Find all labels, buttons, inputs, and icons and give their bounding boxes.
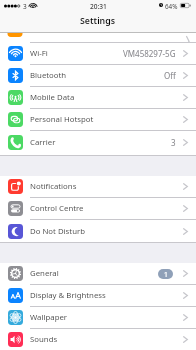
staticText: Settings (80, 15, 116, 27)
staticText: 64% (165, 2, 178, 11)
staticText: Sounds (30, 334, 58, 345)
staticText: 1 (164, 270, 168, 279)
staticText: Mobile Data (30, 92, 75, 103)
button[interactable]: Bluetooth (0, 65, 196, 87)
staticText: Off (164, 70, 176, 81)
staticText: 3 (23, 2, 27, 11)
staticText: VM458297-5G (123, 48, 176, 59)
button[interactable]: General (0, 263, 196, 285)
button[interactable]: Notifications (0, 176, 196, 198)
staticText: 3 (171, 137, 176, 148)
button[interactable]: Control Centre (0, 198, 196, 220)
staticText: Personal Hotspot (30, 114, 94, 125)
staticText: Carrier (30, 137, 56, 148)
staticText: Do Not Disturb (30, 226, 86, 237)
button[interactable]: Wallpaper (0, 307, 196, 329)
button[interactable]: Do Not Disturb (0, 220, 196, 242)
staticText: 20:31 (90, 2, 107, 11)
button[interactable]: Wi-Fi (0, 43, 196, 65)
staticText: Bluetooth (30, 70, 67, 81)
button[interactable]: Display & Brightness (0, 285, 196, 307)
staticText: Wallpaper (30, 312, 68, 323)
staticText: Wi-Fi (30, 48, 48, 59)
staticText: Notifications (30, 181, 77, 192)
staticText: Control Centre (30, 203, 84, 214)
staticText: General (30, 268, 59, 279)
button[interactable]: Personal Hotspot (0, 109, 196, 131)
button[interactable]: Sounds (0, 329, 196, 350)
button[interactable]: Carrier (0, 131, 196, 153)
staticText: Display & Brightness (30, 290, 106, 301)
button[interactable]: Mobile Data (0, 87, 196, 109)
